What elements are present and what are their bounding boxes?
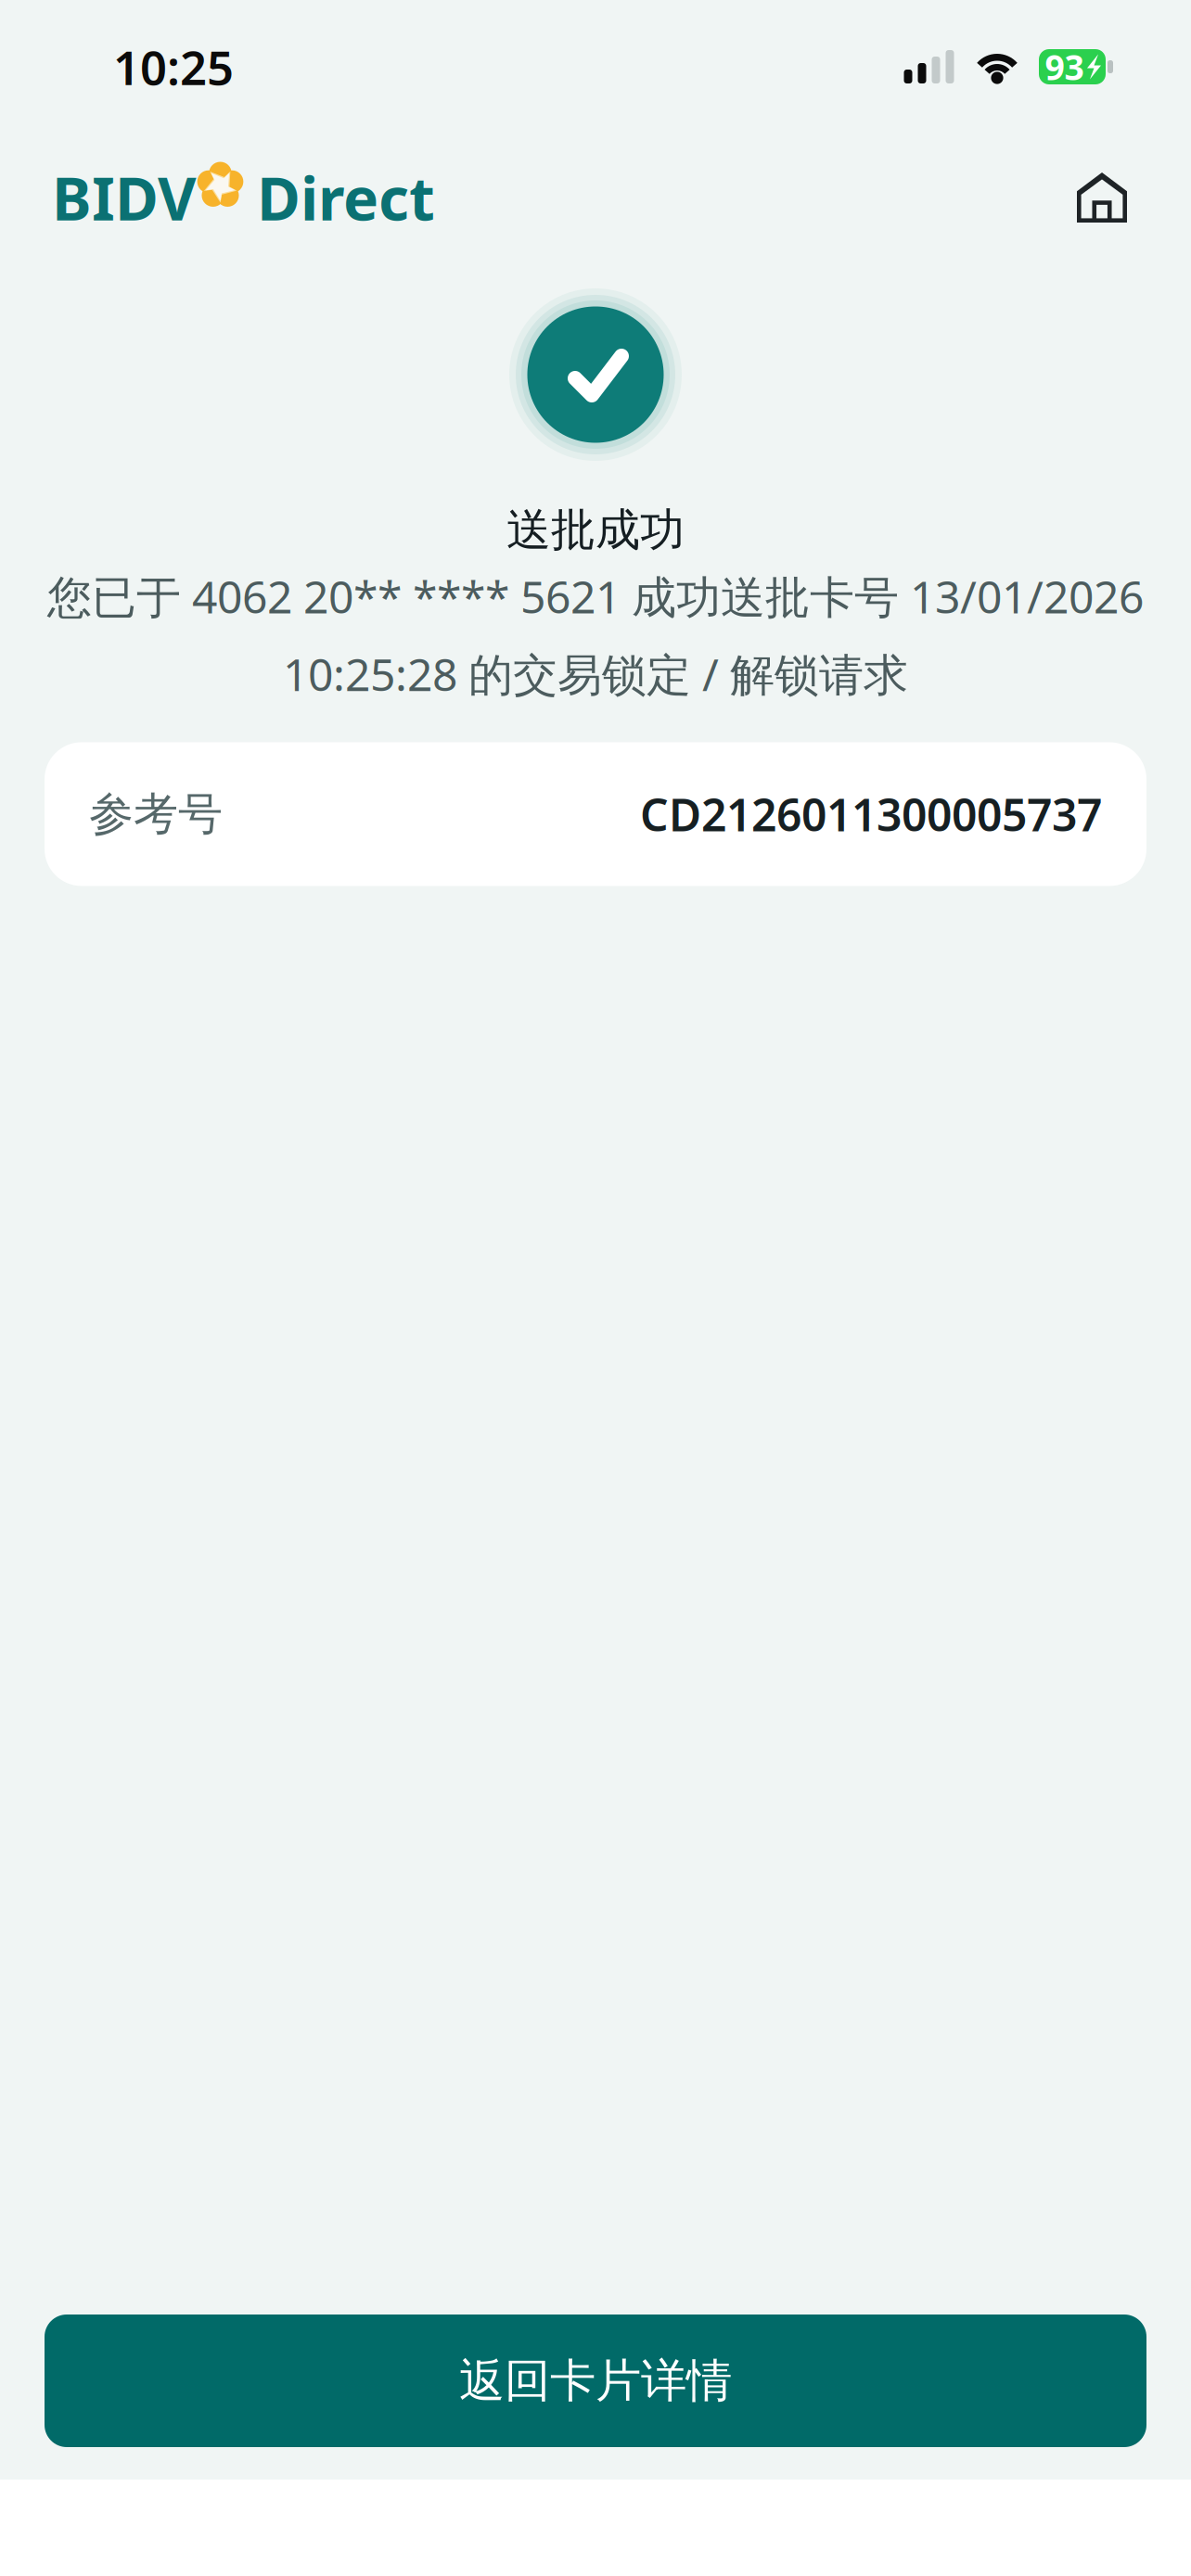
staticText: 10:25 (113, 36, 234, 98)
staticText: 您已于 4062 20** **** 5621 成功送批卡号 13/01/202… (47, 567, 1144, 626)
button[interactable]: Home (1056, 151, 1148, 244)
staticText: 10:25:28 的交易锁定 / 解锁请求 (283, 644, 908, 703)
staticText: 返回卡片详情 (459, 2353, 732, 2409)
staticText: Direct (257, 158, 435, 237)
staticText: 93 (1045, 44, 1084, 90)
staticText: 参考号 (89, 787, 223, 842)
staticText: 送批成功 (506, 503, 685, 557)
staticText: CD2126011300005737 (640, 785, 1102, 844)
staticText: BIDV (52, 158, 197, 237)
button[interactable]: 返回卡片详情 (45, 2315, 1146, 2447)
